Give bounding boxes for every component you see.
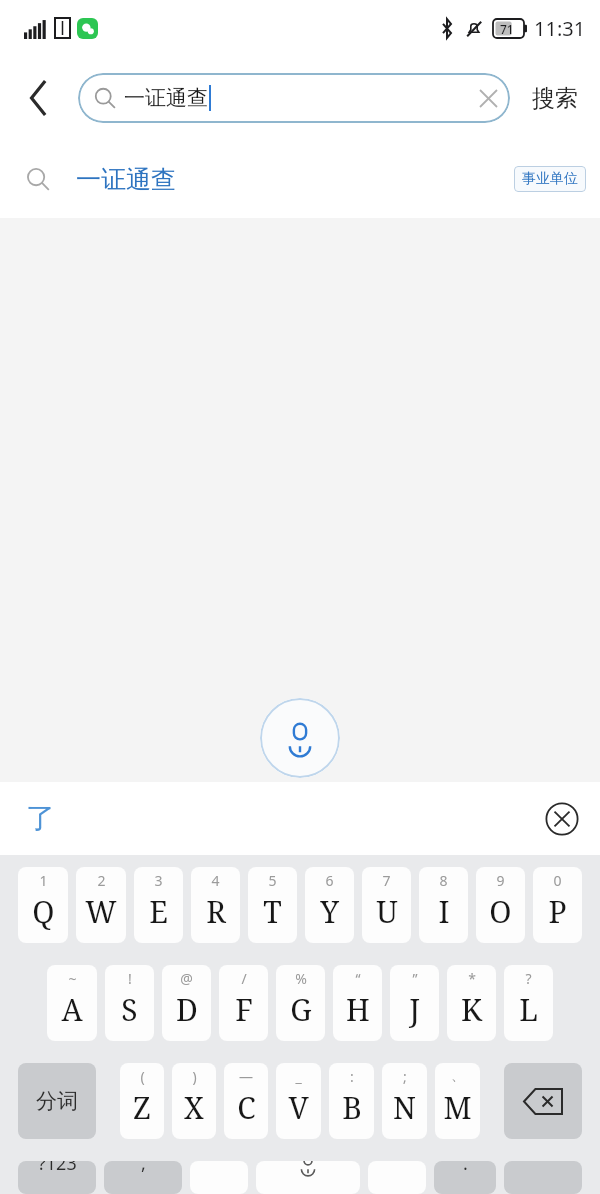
staticText: P xyxy=(548,891,567,932)
button[interactable]: ( xyxy=(120,1063,164,1139)
staticText: V xyxy=(288,1087,309,1128)
staticText: K xyxy=(461,989,482,1030)
staticText: 5 xyxy=(268,871,277,890)
button[interactable]: 4 xyxy=(191,867,240,943)
staticText: B xyxy=(342,1087,362,1128)
button[interactable]: Clear text xyxy=(466,76,510,120)
staticText: . xyxy=(463,1161,468,1176)
staticText: F xyxy=(235,989,253,1030)
button[interactable]: / xyxy=(219,965,268,1041)
staticText: A xyxy=(61,989,83,1030)
button[interactable]: . xyxy=(434,1161,496,1194)
staticText: W xyxy=(85,891,117,932)
button[interactable]: Close keyboard xyxy=(538,795,586,843)
staticText: 、 xyxy=(451,1067,465,1085)
staticText: “ xyxy=(355,969,361,988)
staticText: Z xyxy=(133,1087,151,1128)
button[interactable]: ! xyxy=(105,965,154,1041)
button[interactable]: , xyxy=(104,1161,182,1194)
staticText: _ xyxy=(295,1067,302,1086)
button[interactable]: 一证通查 xyxy=(78,73,510,123)
button[interactable]: ?123 xyxy=(18,1161,96,1194)
staticText: ; xyxy=(403,1067,407,1086)
staticText: * xyxy=(468,969,476,988)
staticText: ” xyxy=(412,969,418,988)
button[interactable]: Back xyxy=(0,56,78,140)
staticText: 一证通查 xyxy=(76,164,176,195)
staticText: O xyxy=(489,891,512,932)
button[interactable]: 了 xyxy=(26,800,55,837)
button[interactable]: 2 xyxy=(76,867,126,943)
button[interactable]: @ xyxy=(162,965,211,1041)
button[interactable]: ” xyxy=(390,965,439,1041)
staticText: 4 xyxy=(211,871,220,890)
staticText: R xyxy=(206,891,226,932)
button[interactable]: : xyxy=(329,1063,374,1139)
button[interactable]: — xyxy=(224,1063,268,1139)
staticText: G xyxy=(290,989,312,1030)
button[interactable] xyxy=(368,1161,426,1194)
staticText: M xyxy=(443,1087,472,1128)
button[interactable]: * xyxy=(447,965,496,1041)
staticText: 0 xyxy=(553,871,562,890)
button[interactable]: 0 xyxy=(533,867,582,943)
button[interactable] xyxy=(190,1161,248,1194)
button[interactable]: % xyxy=(276,965,325,1041)
staticText: 分词 xyxy=(36,1088,78,1114)
staticText: ( xyxy=(140,1067,145,1086)
staticText: D xyxy=(176,989,198,1030)
staticText: 71 xyxy=(500,21,514,37)
staticText: @ xyxy=(180,969,193,988)
staticText: 6 xyxy=(325,871,334,890)
button[interactable]: 搜索 xyxy=(510,56,600,140)
staticText: N xyxy=(393,1087,416,1128)
button[interactable]: 分词 xyxy=(18,1063,96,1139)
staticText: 一证通查 xyxy=(124,85,208,111)
staticText: C xyxy=(237,1087,256,1128)
staticText: , xyxy=(141,1161,146,1176)
staticText: ! xyxy=(128,969,132,988)
button[interactable]: ? xyxy=(504,965,553,1041)
button[interactable]: 6 xyxy=(305,867,354,943)
staticText: 搜索 xyxy=(532,84,578,113)
button[interactable]: 7 xyxy=(362,867,411,943)
button[interactable]: Backspace xyxy=(504,1063,582,1139)
staticText: 2 xyxy=(97,871,106,890)
staticText: ) xyxy=(192,1067,197,1086)
staticText: 9 xyxy=(496,871,505,890)
button[interactable]: 一证通查 xyxy=(0,140,600,218)
button[interactable]: 3 xyxy=(134,867,183,943)
button[interactable]: 5 xyxy=(248,867,297,943)
staticText: X xyxy=(184,1087,204,1128)
button[interactable]: _ xyxy=(276,1063,321,1139)
staticText: Q xyxy=(32,891,55,932)
staticText: T xyxy=(263,891,282,932)
staticText: — xyxy=(239,1067,253,1086)
staticText: 3 xyxy=(154,871,163,890)
staticText: : xyxy=(350,1067,354,1086)
button[interactable]: “ xyxy=(333,965,382,1041)
staticText: 1 xyxy=(39,871,48,890)
staticText: J xyxy=(409,989,420,1030)
staticText: L xyxy=(519,989,538,1030)
button[interactable]: ~ xyxy=(47,965,97,1041)
button[interactable]: 8 xyxy=(419,867,468,943)
staticText: ? xyxy=(525,969,532,988)
button[interactable]: 1 xyxy=(18,867,68,943)
staticText: E xyxy=(149,891,168,932)
button[interactable]: 9 xyxy=(476,867,525,943)
button[interactable]: Enter xyxy=(504,1161,582,1194)
staticText: 8 xyxy=(439,871,448,890)
staticText: 了 xyxy=(26,800,55,837)
staticText: U xyxy=(376,891,398,932)
staticText: ~ xyxy=(68,969,77,988)
staticText: H xyxy=(346,989,370,1030)
button[interactable]: 、 xyxy=(435,1063,480,1139)
button[interactable]: ) xyxy=(172,1063,216,1139)
button[interactable]: Voice input xyxy=(256,1161,360,1194)
staticText: 11:31 xyxy=(534,15,586,42)
button[interactable]: Voice input xyxy=(260,698,340,778)
staticText: % xyxy=(295,969,307,988)
staticText: S xyxy=(121,989,138,1030)
button[interactable]: ; xyxy=(382,1063,427,1139)
